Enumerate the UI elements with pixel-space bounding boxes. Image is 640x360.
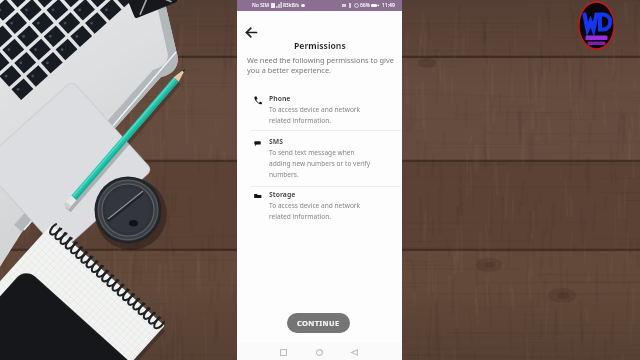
button[interactable]: Back (346, 344, 362, 360)
button[interactable]: SMS (237, 135, 402, 185)
staticText: To access device and network related inf… (269, 201, 361, 221)
button[interactable]: CONTINUE (287, 313, 350, 333)
staticText: No SIM (252, 2, 270, 9)
staticText: 83kB/s (283, 2, 299, 9)
staticText: 11:49 (382, 2, 395, 9)
staticText: We need the following permissions to giv… (247, 55, 394, 75)
staticText: Phone (269, 94, 291, 103)
staticText: Storage (269, 190, 296, 199)
staticText: To access device and network related inf… (269, 105, 361, 125)
staticText: SMS (269, 137, 283, 146)
button[interactable]: Phone (237, 92, 402, 131)
button[interactable]: Back (243, 24, 259, 40)
staticText: 66% (360, 2, 370, 9)
staticText: Permissions (294, 40, 346, 52)
button[interactable]: Recents (275, 344, 291, 360)
button[interactable]: Storage (237, 188, 402, 227)
button[interactable]: Home (311, 344, 327, 360)
staticText: To send text message when adding new num… (269, 148, 371, 179)
staticText: CONTINUE (297, 318, 340, 328)
